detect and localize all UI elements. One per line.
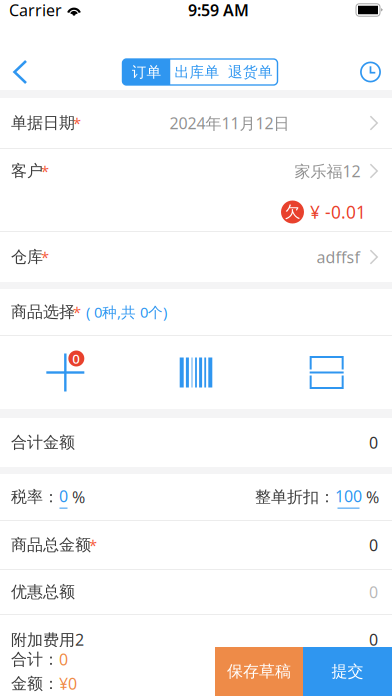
button[interactable]: Order history xyxy=(357,56,384,88)
staticText: adffsf xyxy=(317,246,361,268)
staticText: 9:59 AM xyxy=(188,0,249,21)
staticText: 0 xyxy=(369,432,378,453)
staticText: 整单折扣： xyxy=(255,487,335,507)
staticText: 家乐福12 xyxy=(295,160,361,182)
button[interactable]: 保存草稿 xyxy=(215,647,303,696)
staticText: 金额： xyxy=(11,674,59,693)
button[interactable]: 订单 xyxy=(122,59,170,85)
staticText: 退货单 xyxy=(228,63,273,81)
staticText: * xyxy=(73,302,81,322)
staticText: 提交 xyxy=(331,662,363,681)
button[interactable]: Back xyxy=(1,56,39,88)
staticText: 0 xyxy=(72,350,80,367)
staticText: 欠 xyxy=(284,202,300,222)
staticText: 客户 xyxy=(11,161,43,181)
staticText: 商品选择 xyxy=(11,302,75,322)
staticText: 税率： xyxy=(11,487,59,507)
button[interactable]: Add product xyxy=(0,336,131,409)
button[interactable]: 客户 xyxy=(0,149,392,231)
staticText: * xyxy=(41,161,49,181)
staticText: * xyxy=(89,535,97,555)
button[interactable]: 出库单 xyxy=(170,59,223,85)
staticText: Carrier xyxy=(9,0,62,21)
staticText: 商品总金额 xyxy=(11,535,91,555)
staticText: % xyxy=(362,486,379,508)
staticText: 0 xyxy=(369,581,378,603)
button[interactable]: 100 xyxy=(335,485,362,509)
staticText: * xyxy=(73,113,81,133)
staticText: 出库单 xyxy=(174,63,219,81)
staticText: 订单 xyxy=(131,63,161,81)
staticText: 0 xyxy=(369,629,378,650)
staticText: ¥0 xyxy=(59,673,77,694)
button[interactable]: Scan barcode xyxy=(131,336,261,409)
staticText: 0 xyxy=(59,485,68,507)
button[interactable]: 仓库 xyxy=(0,232,392,282)
button[interactable]: 提交 xyxy=(303,647,392,696)
staticText: * xyxy=(41,247,49,267)
staticText: 优惠总额 xyxy=(11,582,75,602)
staticText: 合计金额 xyxy=(11,433,75,452)
button[interactable]: 单据日期 xyxy=(0,98,392,148)
button[interactable]: 退货单 xyxy=(223,59,277,85)
button[interactable]: 0 xyxy=(59,485,68,509)
staticText: 保存草稿 xyxy=(227,662,291,681)
staticText: 0 xyxy=(59,649,68,670)
staticText: 单据日期 xyxy=(11,113,75,133)
staticText: ( 0种,共 0个) xyxy=(86,302,167,322)
staticText: 合计： xyxy=(11,649,59,669)
staticText: % xyxy=(68,486,85,508)
staticText: 2024年11月12日 xyxy=(170,112,290,134)
staticText: 仓库 xyxy=(11,247,43,267)
staticText: 100 xyxy=(335,485,362,507)
staticText: 附加费用2 xyxy=(11,629,84,650)
staticText: 0 xyxy=(369,534,378,556)
staticText: ¥ -0.01 xyxy=(310,200,366,223)
button[interactable]: Batch entry xyxy=(261,336,392,409)
